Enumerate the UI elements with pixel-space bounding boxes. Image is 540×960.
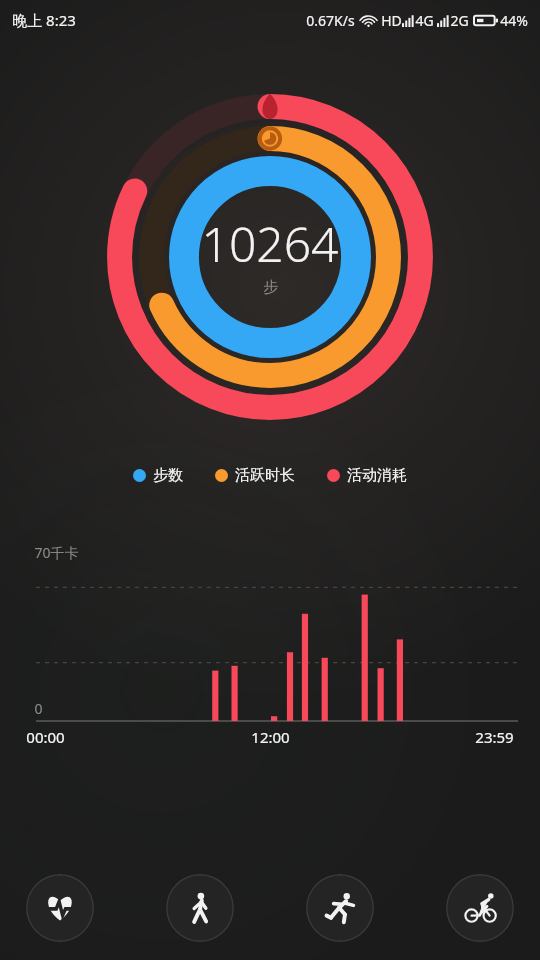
button[interactable]: 活跃时长: [213, 462, 297, 489]
staticText: 12:00: [251, 727, 290, 747]
staticText: 0.67K/s: [306, 11, 355, 30]
staticText: 活动消耗: [347, 466, 407, 485]
button[interactable]: Cycling: [446, 874, 514, 942]
staticText: 10264: [201, 211, 339, 276]
staticText: 0: [34, 699, 43, 718]
button[interactable]: 步数: [131, 462, 185, 489]
staticText: 活跃时长: [235, 466, 295, 485]
staticText: 晚上 8:23: [12, 10, 76, 30]
button[interactable]: Walking: [166, 874, 234, 942]
staticText: 2G: [450, 11, 469, 30]
staticText: 步: [263, 278, 278, 297]
staticText: 23:59: [475, 727, 514, 747]
button[interactable]: Heart rate: [26, 874, 94, 942]
staticText: 44%: [500, 11, 528, 30]
staticText: 步数: [153, 466, 183, 485]
staticText: 70千卡: [34, 543, 79, 562]
button[interactable]: 活动消耗: [325, 462, 409, 489]
staticText: 4G: [415, 11, 434, 30]
staticText: 00:00: [26, 727, 65, 747]
button[interactable]: Running: [306, 874, 374, 942]
staticText: HD: [381, 11, 402, 30]
